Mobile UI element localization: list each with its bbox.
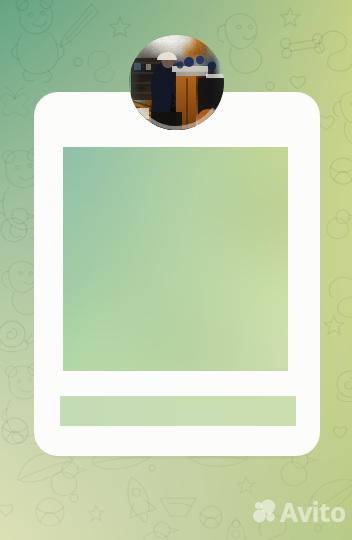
staticText: Avito: [280, 494, 346, 529]
button[interactable]: Avito listing preview: [0, 0, 352, 540]
